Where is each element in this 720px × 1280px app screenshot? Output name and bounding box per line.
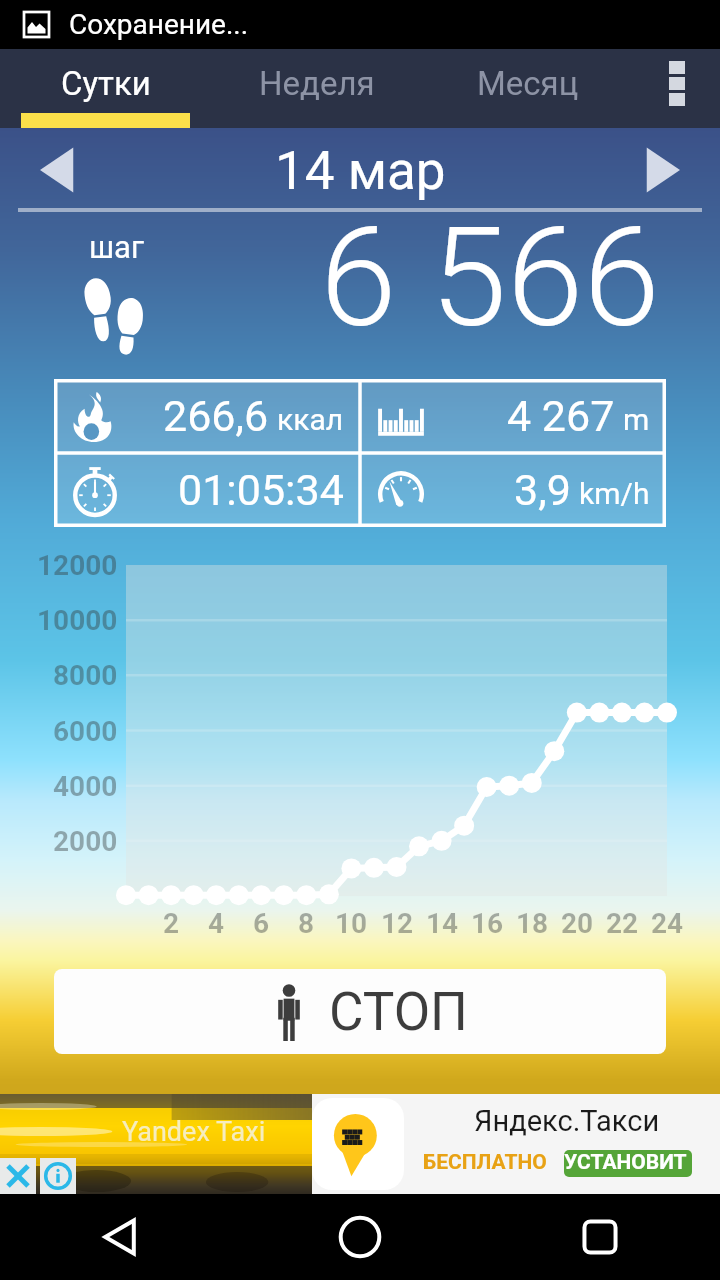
staticText: 16 <box>471 907 504 940</box>
staticText: СТОП <box>329 981 468 1043</box>
staticText: 6 566 <box>320 197 660 359</box>
button[interactable]: Неделя <box>211 49 422 128</box>
staticText: 10000 <box>37 604 118 637</box>
staticText: Сохранение... <box>69 8 249 41</box>
staticText: 2 <box>163 907 180 940</box>
button[interactable]: Close ad <box>0 1158 36 1194</box>
staticText: km/h <box>579 476 650 511</box>
staticText: БЕСПЛАТНО <box>423 1150 547 1175</box>
button[interactable]: Сутки <box>0 49 211 128</box>
staticText: Яндекс.Такси <box>474 1104 660 1138</box>
staticText: 8 <box>298 907 315 940</box>
staticText: 14 мар <box>275 140 446 202</box>
button[interactable]: Recent apps <box>480 1194 720 1280</box>
staticText: 10 <box>335 907 368 940</box>
button[interactable]: СТОП <box>54 969 666 1054</box>
staticText: 12 <box>381 907 414 940</box>
staticText: 266,6 <box>163 391 269 441</box>
staticText: Yandex Taxi <box>122 1116 266 1148</box>
button[interactable]: 3,9 <box>360 453 666 527</box>
button[interactable]: 266,6 <box>54 379 360 453</box>
staticText: Месяц <box>477 64 579 103</box>
staticText: 6 <box>253 907 270 940</box>
staticText: 20 <box>561 907 594 940</box>
staticText: 6000 <box>53 715 118 748</box>
staticText: 22 <box>606 907 639 940</box>
staticText: 2000 <box>53 825 118 858</box>
button[interactable]: Next day <box>632 142 696 198</box>
staticText: 4 <box>208 907 225 940</box>
button[interactable]: 01:05:34 <box>54 453 360 527</box>
staticText: 12000 <box>37 549 118 582</box>
staticText: 14 <box>426 907 459 940</box>
button[interactable]: Месяц <box>422 49 633 128</box>
staticText: m <box>623 402 650 437</box>
button[interactable]: УСТАНОВИТЬ <box>564 1150 692 1177</box>
button[interactable]: Back <box>0 1194 240 1280</box>
button[interactable]: Home <box>240 1194 480 1280</box>
button[interactable]: 4 267 <box>360 379 666 453</box>
staticText: шаг <box>89 229 144 265</box>
staticText: 3,9 <box>514 465 571 515</box>
staticText: 4000 <box>53 770 118 803</box>
staticText: Сутки <box>61 64 151 103</box>
staticText: УСТАНОВИТЬ <box>564 1150 692 1177</box>
staticText: 24 <box>651 907 684 940</box>
button[interactable]: Previous day <box>24 142 88 198</box>
staticText: 4 267 <box>507 391 615 441</box>
staticText: 18 <box>516 907 549 940</box>
staticText: ккал <box>277 402 344 437</box>
button[interactable]: More options <box>633 49 720 128</box>
staticText: 8000 <box>53 659 118 692</box>
button[interactable]: Ad info <box>40 1158 76 1194</box>
staticText: Неделя <box>259 64 375 103</box>
staticText: 01:05:34 <box>178 465 344 515</box>
